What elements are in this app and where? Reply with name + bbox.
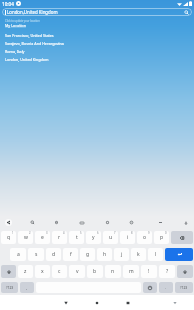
button[interactable]: k bbox=[131, 248, 146, 261]
button[interactable]: Roma, Italy bbox=[0, 47, 194, 55]
button[interactable]: Recent apps bbox=[120, 295, 136, 310]
button[interactable]: p bbox=[154, 231, 169, 244]
button[interactable]: Enter bbox=[165, 248, 193, 261]
staticText: My Location bbox=[5, 23, 26, 28]
staticText: t bbox=[76, 234, 78, 241]
button[interactable]: f bbox=[63, 248, 78, 261]
button[interactable]: a bbox=[10, 248, 26, 261]
button[interactable]: e bbox=[35, 231, 50, 244]
button[interactable]: Sticker bbox=[101, 216, 114, 229]
button[interactable]: Sarajevo, Bosnia And Herzegovina bbox=[0, 39, 194, 47]
staticText: i bbox=[127, 234, 129, 241]
staticText: j bbox=[121, 251, 123, 258]
staticText: 7 bbox=[114, 231, 116, 235]
button[interactable]: s bbox=[28, 248, 44, 261]
staticText: s bbox=[35, 251, 38, 258]
staticText: 0 bbox=[165, 231, 167, 235]
staticText: San Francisco, United States bbox=[5, 33, 54, 38]
button[interactable]: j bbox=[114, 248, 129, 261]
button[interactable]: GIF bbox=[75, 216, 88, 229]
staticText: , bbox=[26, 285, 28, 291]
staticText: 9 bbox=[148, 231, 150, 235]
button[interactable]: . bbox=[159, 282, 173, 293]
staticText: 4 bbox=[63, 231, 65, 235]
staticText: d bbox=[52, 251, 56, 258]
staticText: c bbox=[58, 268, 61, 275]
button[interactable]: c bbox=[52, 265, 67, 278]
button[interactable]: d bbox=[46, 248, 61, 261]
button[interactable]: q bbox=[1, 231, 16, 244]
staticText: 8 bbox=[131, 231, 133, 235]
staticText: a bbox=[17, 251, 20, 258]
staticText: k bbox=[137, 251, 140, 258]
staticText: q bbox=[7, 234, 11, 241]
button[interactable]: Clipboard bbox=[50, 216, 63, 229]
button[interactable]: b bbox=[87, 265, 103, 278]
button[interactable]: o bbox=[137, 231, 152, 244]
button[interactable]: London, United Kingdom bbox=[0, 55, 194, 63]
button[interactable]: v bbox=[69, 265, 85, 278]
staticText: Sarajevo, Bosnia And Herzegovina bbox=[5, 41, 64, 46]
button[interactable]: Shift bbox=[1, 265, 16, 278]
button[interactable]: Back bbox=[58, 295, 74, 310]
button[interactable]: More options bbox=[154, 216, 167, 229]
button[interactable]: z bbox=[18, 265, 33, 278]
button[interactable]: Emoji bbox=[143, 282, 157, 293]
button[interactable]: r bbox=[52, 231, 67, 244]
staticText: . bbox=[165, 285, 167, 291]
button[interactable]: m bbox=[123, 265, 139, 278]
button[interactable]: ? bbox=[159, 265, 175, 278]
button[interactable]: i bbox=[120, 231, 135, 244]
staticText: Roma, Italy bbox=[5, 49, 25, 54]
button[interactable]: t bbox=[69, 231, 84, 244]
button[interactable]: w bbox=[18, 231, 33, 244]
button[interactable]: Share bbox=[2, 216, 15, 229]
staticText: 3 bbox=[46, 231, 48, 235]
staticText: ! bbox=[148, 268, 150, 275]
staticText: r bbox=[58, 234, 61, 241]
button[interactable]: h bbox=[97, 248, 112, 261]
button[interactable]: ?123 bbox=[175, 282, 193, 293]
staticText: 6 bbox=[97, 231, 99, 235]
staticText: e bbox=[41, 234, 44, 241]
button[interactable]: Home bbox=[89, 295, 105, 310]
button[interactable]: u bbox=[103, 231, 118, 244]
button[interactable]: g bbox=[80, 248, 95, 261]
button[interactable]: Switch keyboard bbox=[167, 295, 183, 310]
staticText: l bbox=[155, 251, 157, 258]
button[interactable]: Search bbox=[26, 216, 39, 229]
button[interactable]: Voice input bbox=[179, 216, 192, 229]
button[interactable]: London,United Kingdom bbox=[2, 8, 192, 16]
button[interactable]: Emoji bbox=[125, 216, 138, 229]
staticText: y bbox=[92, 234, 95, 241]
staticText: ?123 bbox=[6, 285, 14, 290]
button[interactable]: l bbox=[148, 248, 163, 261]
staticText: 1 bbox=[12, 231, 14, 235]
other: Search bbox=[184, 10, 189, 15]
staticText: b bbox=[93, 268, 97, 275]
staticText: p bbox=[160, 234, 164, 241]
button[interactable]: Backspace bbox=[177, 265, 193, 278]
button[interactable]: ! bbox=[141, 265, 157, 278]
staticText: z bbox=[24, 268, 27, 275]
button[interactable]: x bbox=[35, 265, 50, 278]
button[interactable]: Click to update your location bbox=[0, 19, 194, 28]
staticText: u bbox=[109, 234, 113, 241]
button[interactable]: , bbox=[20, 282, 34, 293]
button[interactable]: ?123 bbox=[1, 282, 18, 293]
staticText: London,United Kingdom bbox=[7, 9, 58, 15]
button[interactable]: n bbox=[105, 265, 121, 278]
button[interactable]: Backspace bbox=[171, 231, 193, 244]
staticText: n bbox=[111, 268, 115, 275]
staticText: o bbox=[143, 234, 147, 241]
staticText: h bbox=[103, 251, 107, 258]
button[interactable]: San Francisco, United States bbox=[0, 31, 194, 39]
staticText: w bbox=[24, 234, 28, 241]
staticText: 5 bbox=[80, 231, 82, 235]
staticText: v bbox=[76, 268, 79, 275]
staticText: f bbox=[70, 251, 72, 258]
button[interactable]: y bbox=[86, 231, 101, 244]
staticText: ?123 bbox=[180, 285, 188, 290]
staticText: ? bbox=[166, 268, 169, 275]
